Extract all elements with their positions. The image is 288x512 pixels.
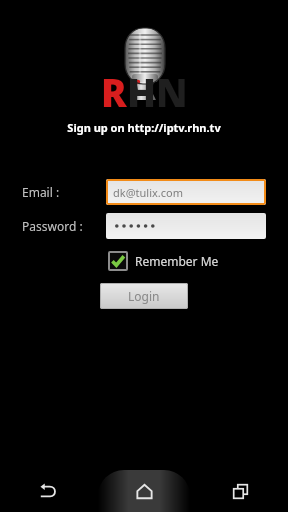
staticText: HN [127,66,188,118]
staticText: R [101,66,127,118]
staticText: Remember Me [135,253,219,269]
button[interactable]: Login [100,283,188,309]
button[interactable] [106,213,266,239]
staticText: Email : [22,184,60,200]
staticText: dk@tulix.com [113,185,183,200]
button[interactable]: Recent apps [192,470,288,512]
button[interactable]: Remember Me [106,249,221,273]
button[interactable]: dk@tulix.com [106,179,266,205]
button[interactable]: Home [96,470,192,512]
button[interactable]: Back [0,470,96,512]
staticText: Sign up on http://iptv.rhn.tv [67,120,221,135]
staticText: Login [128,288,160,304]
staticText: Password : [22,218,83,234]
